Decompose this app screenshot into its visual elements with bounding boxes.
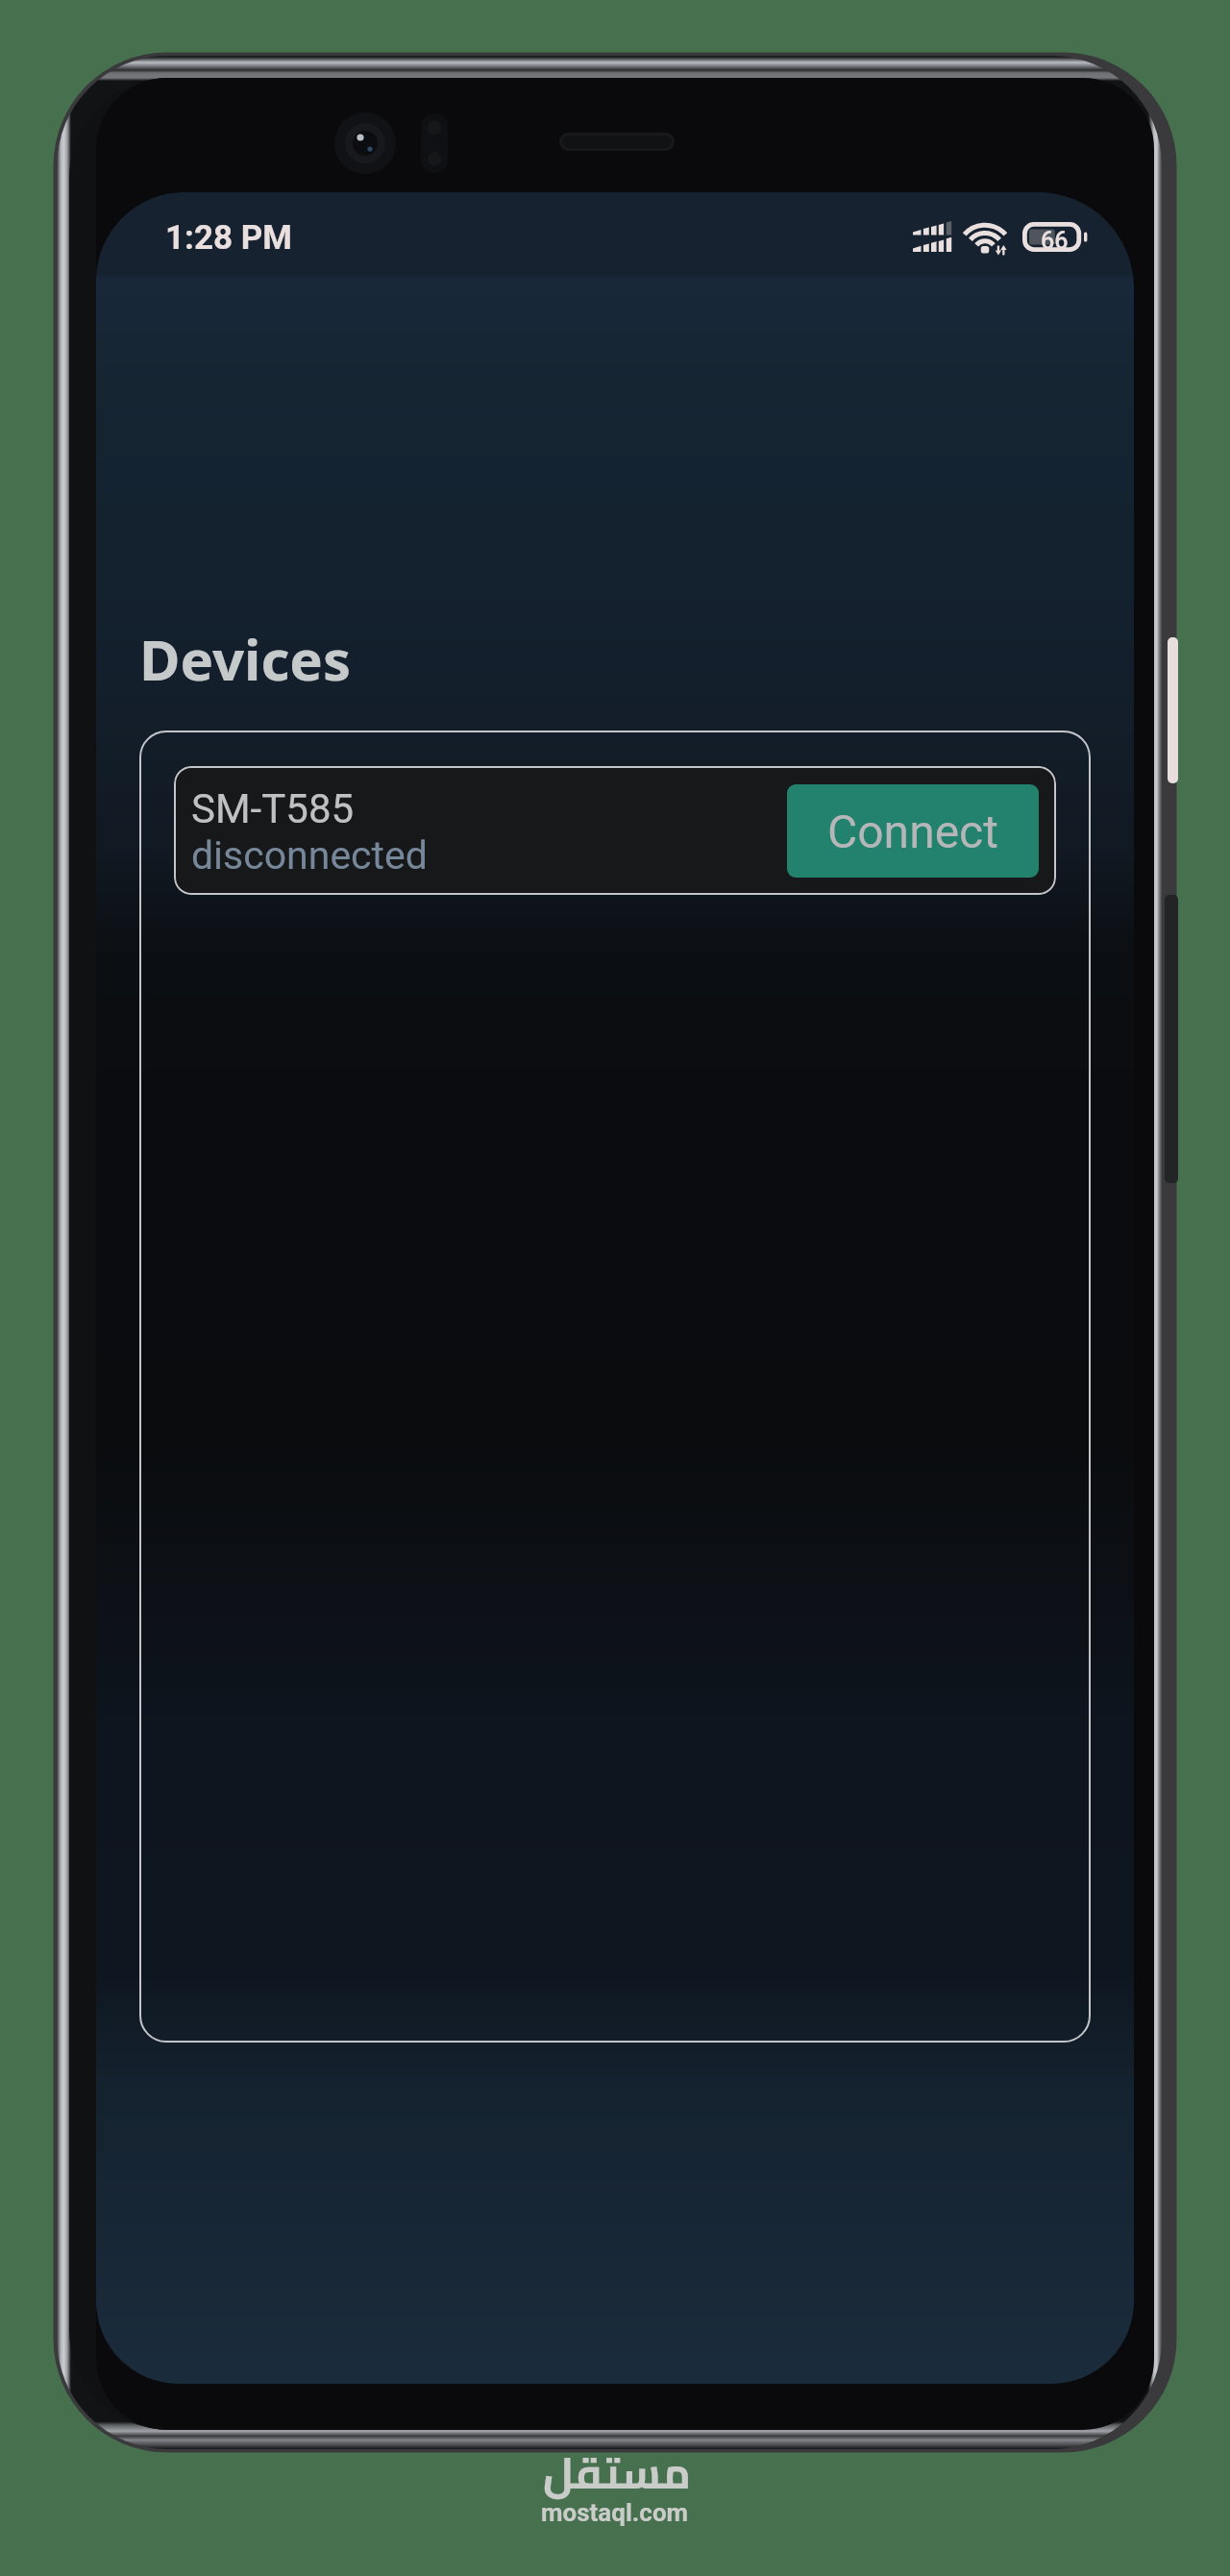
staticText: 66: [1041, 227, 1069, 255]
staticText: disconnected: [191, 832, 428, 879]
staticText: mostaql.com: [541, 2498, 689, 2527]
staticText: مستقل: [543, 2432, 692, 2513]
button[interactable]: SM-T585: [174, 766, 1056, 895]
staticText: 1:28 PM: [165, 218, 293, 258]
staticText: Devices: [139, 621, 352, 697]
button[interactable]: Connect: [787, 784, 1039, 878]
other: Wi-Fi connected: [965, 223, 1007, 256]
staticText: Connect: [827, 805, 998, 858]
other: Battery 66 percent: [1022, 222, 1088, 252]
other: Mobile signal strength: [913, 221, 952, 252]
staticText: SM-T585: [191, 785, 355, 832]
